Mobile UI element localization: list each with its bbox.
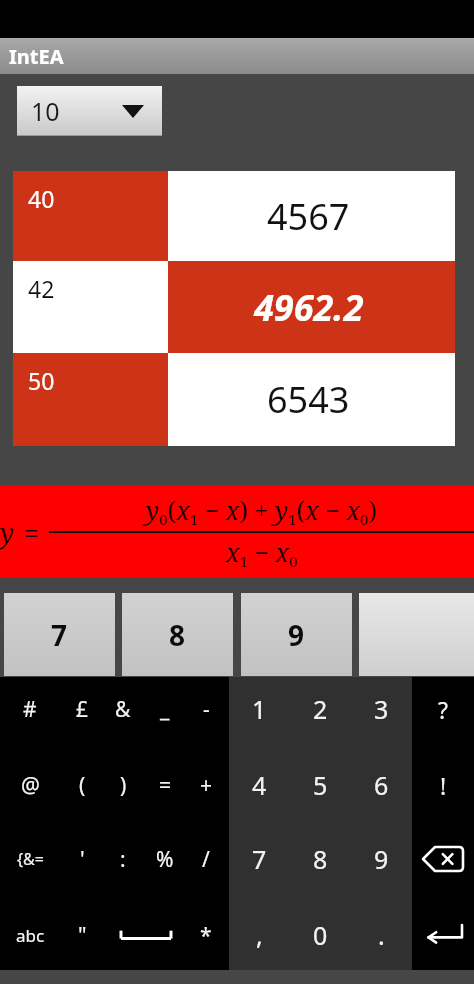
button[interactable]: 4567 [168,171,455,261]
staticText: : [120,845,126,874]
staticText: = [24,514,40,551]
staticText: = [159,771,172,800]
staticText: 8 [169,616,186,654]
staticText: 40 [28,183,55,214]
staticText: y [0,514,15,551]
staticText: 2 [313,692,328,726]
button[interactable]: _ [139,689,191,729]
button[interactable]: {&= [4,839,56,879]
button[interactable]: * [180,915,232,955]
staticText: 50 [28,365,55,396]
button[interactable]: ' [56,839,108,879]
staticText: x1 − x0 [226,535,298,571]
button[interactable]: 6 [355,765,407,805]
staticText: 0 [313,918,328,952]
staticText: {&= [17,848,44,870]
staticText: * [200,921,212,950]
staticText: ( [79,771,86,800]
staticText: abc [16,924,45,947]
button[interactable]: Enter [417,919,469,951]
button[interactable]: " [56,915,108,955]
staticText: 1 [252,692,267,726]
button[interactable]: 10 [17,86,162,136]
button[interactable]: 8 [122,593,233,676]
staticText: + [200,771,213,800]
button[interactable]: Space [118,917,174,953]
button[interactable]: 8 [294,839,346,879]
button[interactable]: 7 [233,839,285,879]
staticText: 4567 [267,192,350,241]
staticText: 7 [252,842,267,876]
staticText: . [378,918,385,952]
button[interactable]: # [4,689,56,729]
staticText: @ [21,771,40,800]
button[interactable]: ! [417,765,469,805]
staticText: 9 [288,616,305,654]
staticText: 9 [374,842,389,876]
button[interactable]: @ [4,765,56,805]
staticText: 42 [28,273,55,304]
button[interactable]: 9 [241,593,352,676]
button[interactable]: + [180,765,232,805]
staticText: ) [120,771,127,800]
staticText: % [156,845,174,874]
staticText: & [115,695,131,724]
staticText: 4 [252,768,267,802]
button[interactable]: ? [417,689,469,729]
staticText: 8 [313,842,328,876]
button[interactable]: 4 [233,765,285,805]
button[interactable]: 3 [355,689,407,729]
staticText: ' [80,845,85,874]
button[interactable]: 5 [294,765,346,805]
button[interactable]: ( [56,765,108,805]
staticText: - [203,695,210,724]
staticText: 5 [313,768,328,802]
staticText: ? [438,694,448,725]
button[interactable]: £ [56,689,108,729]
button[interactable]: 0 [294,915,346,955]
button[interactable]: abc [4,915,56,955]
button[interactable]: & [97,689,149,729]
button[interactable]: 6543 [168,353,455,446]
staticText: " [78,921,87,950]
button[interactable]: 7 [4,593,115,676]
button[interactable]: 1 [233,689,285,729]
staticText: # [23,695,37,724]
staticText: _ [160,695,170,724]
button[interactable]: Key [359,593,474,676]
staticText: 6543 [267,375,350,424]
staticText: 10 [31,94,60,128]
button[interactable]: , [233,915,285,955]
button[interactable]: . [355,915,407,955]
button[interactable]: 50 [13,353,168,446]
button[interactable]: / [180,839,232,879]
staticText: IntEA [9,43,64,70]
button[interactable]: 4962.2 [168,261,455,353]
button[interactable]: Backspace [417,843,469,875]
button[interactable]: 40 [13,171,168,261]
button[interactable]: ) [97,765,149,805]
button[interactable]: 9 [355,839,407,879]
staticText: £ [76,695,89,724]
staticText: 6 [374,768,389,802]
staticText: ! [440,770,447,801]
staticText: 3 [374,692,389,726]
button[interactable]: = [139,765,191,805]
staticText: y0(x1 − x) + y1(x − x0) [146,493,378,529]
staticText: 4962.2 [254,283,364,332]
button[interactable]: : [97,839,149,879]
button[interactable]: 2 [294,689,346,729]
button[interactable]: 42 [13,261,168,353]
staticText: / [202,845,210,874]
staticText: , [256,918,263,952]
staticText: 7 [51,616,68,654]
button[interactable]: - [180,689,232,729]
button[interactable]: % [139,839,191,879]
